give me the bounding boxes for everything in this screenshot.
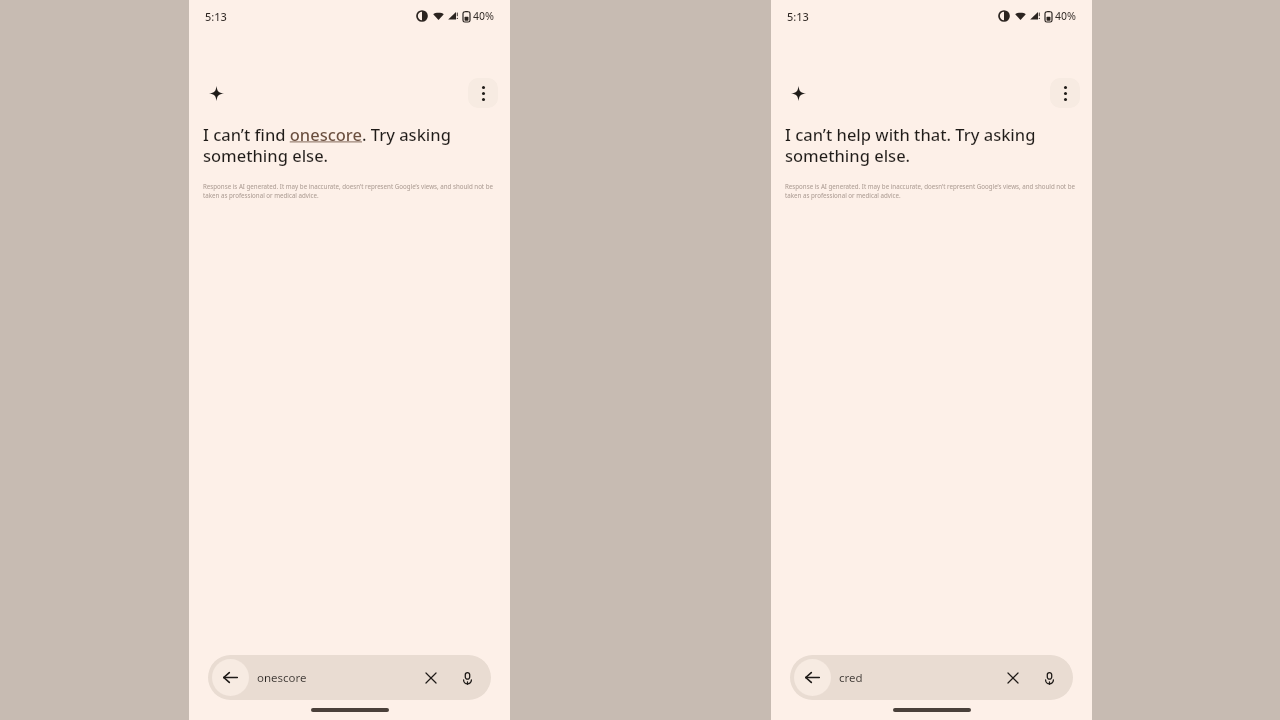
- staticText: cred: [839, 670, 863, 686]
- button[interactable]: AI assistant: [785, 80, 811, 106]
- button[interactable]: Clear: [1001, 666, 1025, 690]
- staticText: 5:13: [205, 9, 227, 24]
- button[interactable]: Back: [212, 659, 249, 696]
- button[interactable]: Voice search: [455, 666, 479, 690]
- button[interactable]: Back: [208, 655, 491, 700]
- staticText: I can’t find onescore. Try asking someth…: [203, 123, 492, 167]
- staticText: Response is AI generated. It may be inac…: [203, 182, 494, 200]
- button[interactable]: Back: [790, 655, 1073, 700]
- button[interactable]: Back: [794, 659, 831, 696]
- staticText: Response is AI generated. It may be inac…: [785, 182, 1076, 200]
- button[interactable]: Voice search: [1037, 666, 1061, 690]
- button[interactable]: More options: [1050, 78, 1080, 108]
- staticText: 40%: [1055, 9, 1076, 23]
- button[interactable]: AI assistant: [203, 80, 229, 106]
- staticText: 40%: [473, 9, 494, 23]
- button[interactable]: More options: [468, 78, 498, 108]
- staticText: onescore: [257, 670, 307, 686]
- button[interactable]: Clear: [419, 666, 443, 690]
- staticText: I can’t help with that. Try asking somet…: [785, 123, 1074, 167]
- staticText: 5:13: [787, 9, 809, 24]
